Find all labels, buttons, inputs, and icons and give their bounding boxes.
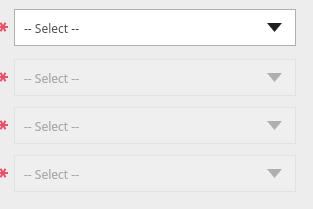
button[interactable]: Select option 1	[14, 9, 296, 46]
staticText: -- Select --	[24, 118, 80, 134]
staticText: -- Select --	[24, 166, 80, 182]
staticText: -- Select --	[24, 20, 80, 36]
button[interactable]: Select option 4	[14, 155, 296, 192]
button[interactable]: Select option 3	[14, 107, 296, 144]
button[interactable]: Select option 2	[14, 59, 296, 96]
staticText: -- Select --	[24, 70, 80, 86]
